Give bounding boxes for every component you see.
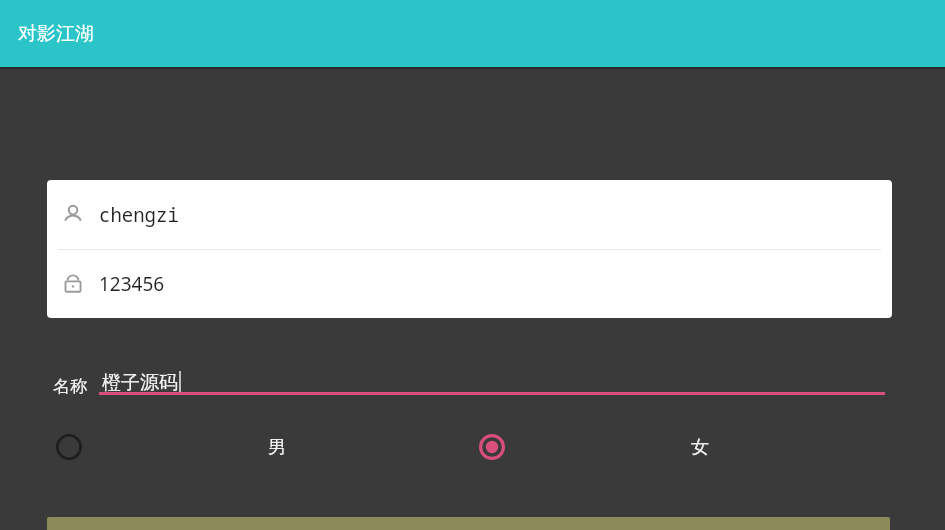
staticText: 橙子源码 — [102, 371, 178, 395]
button[interactable]: 男 — [268, 436, 286, 459]
button[interactable]: Unselected option — [49, 427, 89, 467]
button[interactable]: 橙子源码 — [99, 367, 885, 395]
button[interactable]: 对影江湖 — [18, 22, 94, 46]
staticText: 女 — [691, 436, 709, 459]
other: Password — [60, 271, 86, 297]
button[interactable]: 女 — [691, 436, 709, 459]
staticText: 名称 — [53, 376, 87, 397]
other: Username — [60, 202, 86, 228]
staticText: 男 — [268, 436, 286, 459]
button[interactable]: Username — [47, 180, 892, 249]
button[interactable]: Selected option — [472, 427, 512, 467]
staticText: 对影江湖 — [18, 22, 94, 46]
button[interactable]: Password — [47, 250, 892, 318]
staticText: chengzi — [99, 202, 179, 228]
staticText: 123456 — [99, 271, 165, 297]
